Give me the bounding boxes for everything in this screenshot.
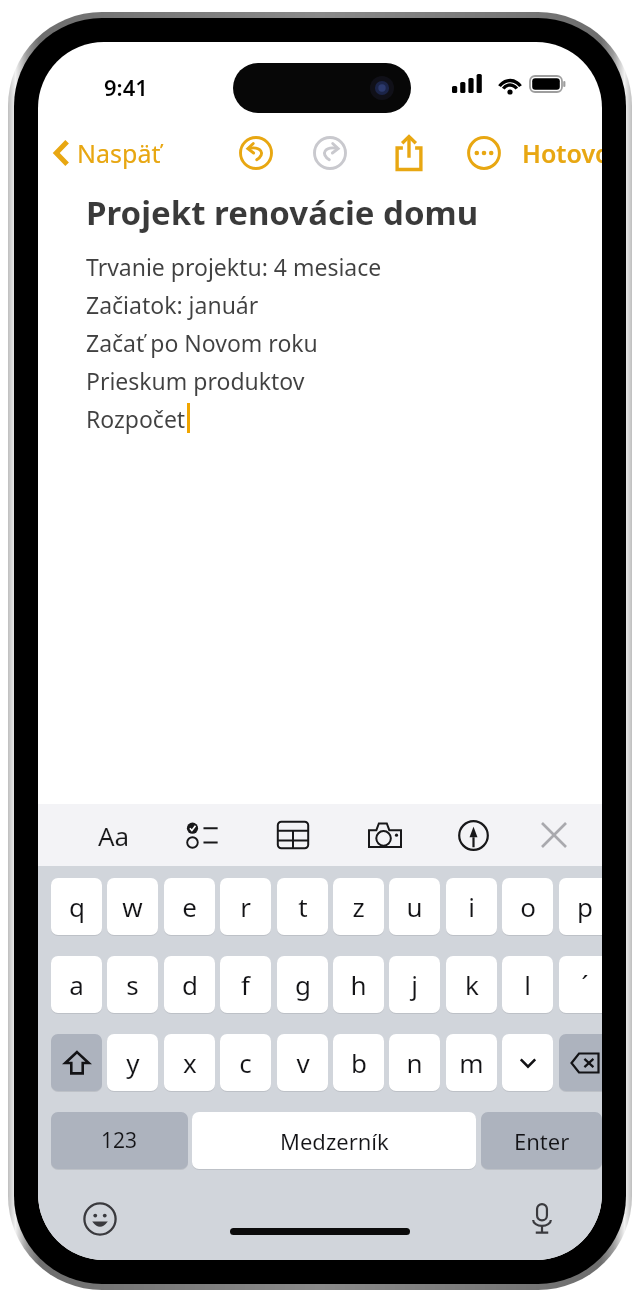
button[interactable]: Camera — [361, 811, 409, 859]
button[interactable]: Numbers — [51, 1112, 188, 1169]
button[interactable]: j — [389, 956, 440, 1013]
staticText: u — [406, 889, 423, 924]
staticText: Medzerník — [280, 1126, 389, 1156]
button[interactable]: x — [164, 1034, 215, 1091]
button[interactable]: d — [164, 956, 215, 1013]
staticText: k — [465, 967, 479, 1002]
staticText: Prieskum produktov — [86, 365, 305, 396]
staticText: q — [69, 889, 85, 924]
staticText: w — [122, 889, 143, 924]
button[interactable]: s — [107, 956, 158, 1013]
button[interactable]: i — [446, 878, 497, 935]
button[interactable]: q — [51, 878, 102, 935]
staticText: h — [350, 967, 367, 1002]
staticText: Enter — [514, 1126, 570, 1156]
staticText: f — [241, 967, 250, 1002]
button[interactable]: Emoji — [78, 1197, 122, 1241]
button[interactable]: Checklist — [178, 811, 226, 859]
button[interactable]: z — [333, 878, 384, 935]
button[interactable]: Markup — [449, 811, 497, 859]
button[interactable]: Undo — [234, 131, 278, 175]
staticText: Projekt renovácie domu — [86, 190, 479, 235]
button[interactable]: n — [389, 1034, 440, 1091]
staticText: p — [577, 889, 593, 924]
button[interactable]: Shift — [51, 1034, 102, 1091]
staticText: j — [411, 967, 418, 1002]
staticText: x — [183, 1045, 197, 1080]
staticText: Začať po Novom roku — [86, 327, 318, 358]
button[interactable]: Backspace — [559, 1034, 602, 1091]
button[interactable]: Share — [385, 129, 433, 177]
button[interactable]: r — [220, 878, 271, 935]
button[interactable]: Dictation — [520, 1197, 564, 1241]
button[interactable]: t — [277, 878, 328, 935]
button[interactable]: Hotovo — [516, 131, 602, 175]
staticText: Hotovo — [522, 136, 602, 170]
button[interactable]: b — [333, 1034, 384, 1091]
button[interactable]: w — [107, 878, 158, 935]
button[interactable]: More — [462, 131, 506, 175]
button[interactable]: e — [164, 878, 215, 935]
button[interactable]: f — [220, 956, 271, 1013]
button[interactable]: u — [389, 878, 440, 935]
button[interactable]: c — [220, 1034, 271, 1091]
button[interactable]: Enter — [481, 1112, 602, 1169]
button[interactable]: Close keyboard — [530, 811, 578, 859]
button[interactable]: k — [446, 956, 497, 1013]
staticText: c — [239, 1045, 252, 1080]
button[interactable]: m — [446, 1034, 497, 1091]
staticText: g — [295, 967, 311, 1002]
button[interactable]: v — [277, 1034, 328, 1091]
staticText: i — [468, 889, 475, 924]
button[interactable]: ´ — [559, 956, 602, 1013]
button[interactable]: Format — [90, 811, 138, 859]
staticText: o — [520, 889, 536, 924]
staticText: m — [459, 1045, 484, 1080]
button[interactable]: y — [107, 1034, 158, 1091]
staticText: b — [351, 1045, 367, 1080]
button[interactable]: p — [559, 878, 602, 935]
staticText: s — [126, 967, 139, 1002]
staticText: Trvanie projektu: 4 mesiace — [86, 251, 382, 282]
staticText: a — [69, 967, 84, 1002]
staticText: t — [298, 889, 308, 924]
staticText: v — [296, 1045, 310, 1080]
button[interactable]: o — [502, 878, 553, 935]
button[interactable]: a — [51, 956, 102, 1013]
staticText: e — [182, 889, 197, 924]
staticText: Rozpočet — [86, 403, 186, 434]
staticText: Naspäť — [77, 136, 161, 170]
staticText: ´ — [581, 967, 589, 1002]
button[interactable]: g — [277, 956, 328, 1013]
staticText: Aa — [98, 818, 130, 853]
staticText: n — [406, 1045, 423, 1080]
staticText: Začiatok: január — [86, 289, 259, 320]
staticText: l — [524, 967, 531, 1002]
button[interactable]: l — [502, 956, 553, 1013]
button[interactable]: Space — [192, 1112, 476, 1169]
button[interactable]: Diacritics — [502, 1034, 553, 1091]
staticText: d — [182, 967, 198, 1002]
staticText: r — [240, 889, 251, 924]
staticText: 9:41 — [104, 72, 148, 102]
button[interactable]: Redo — [308, 131, 352, 175]
button[interactable]: Table — [269, 811, 317, 859]
button[interactable]: Naspäť — [48, 131, 167, 175]
button[interactable]: h — [333, 956, 384, 1013]
staticText: z — [352, 889, 365, 924]
staticText: 123 — [101, 1126, 138, 1155]
staticText: y — [126, 1045, 140, 1080]
